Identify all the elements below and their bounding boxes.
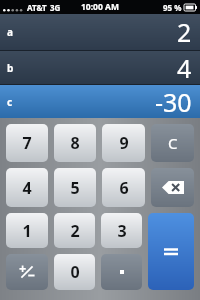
- button[interactable]: Equals: [148, 213, 194, 290]
- staticText: 1: [22, 220, 32, 242]
- button[interactable]: 1: [6, 213, 48, 248]
- staticText: -30: [155, 85, 192, 118]
- button[interactable]: Plus minus: [6, 254, 48, 290]
- button[interactable]: 2: [54, 213, 95, 248]
- button[interactable]: Clear: [151, 124, 194, 162]
- button[interactable]: 6: [102, 168, 145, 207]
- staticText: 7: [22, 132, 32, 154]
- staticText: b: [7, 61, 14, 75]
- staticText: 10:00 AM: [81, 1, 119, 13]
- staticText: 0: [70, 261, 80, 283]
- staticText: C: [168, 133, 178, 153]
- staticText: 5: [70, 177, 80, 199]
- staticText: c: [7, 95, 13, 109]
- button[interactable]: Decimal point: [101, 254, 142, 290]
- button[interactable]: 5: [54, 168, 96, 207]
- button[interactable]: 3: [101, 213, 142, 248]
- button[interactable]: Backspace: [151, 168, 194, 207]
- staticText: 8: [70, 132, 80, 154]
- button[interactable]: c: [0, 85, 200, 118]
- button[interactable]: 4: [6, 168, 48, 207]
- button[interactable]: b: [0, 51, 200, 84]
- button[interactable]: 8: [54, 124, 96, 162]
- staticText: AT&T: [27, 2, 47, 13]
- button[interactable]: a: [0, 14, 200, 50]
- staticText: 9: [119, 132, 129, 154]
- button[interactable]: 7: [6, 124, 48, 162]
- staticText: 4: [177, 51, 192, 84]
- button[interactable]: 0: [54, 254, 95, 290]
- staticText: 6: [119, 177, 129, 199]
- staticText: 4: [22, 177, 32, 199]
- staticText: 95 %: [163, 2, 182, 13]
- button[interactable]: 9: [102, 124, 145, 162]
- staticText: a: [7, 25, 13, 39]
- staticText: 2: [177, 15, 192, 49]
- staticText: 3: [117, 220, 127, 242]
- staticText: 3G: [50, 2, 61, 13]
- staticText: 2: [70, 220, 80, 242]
